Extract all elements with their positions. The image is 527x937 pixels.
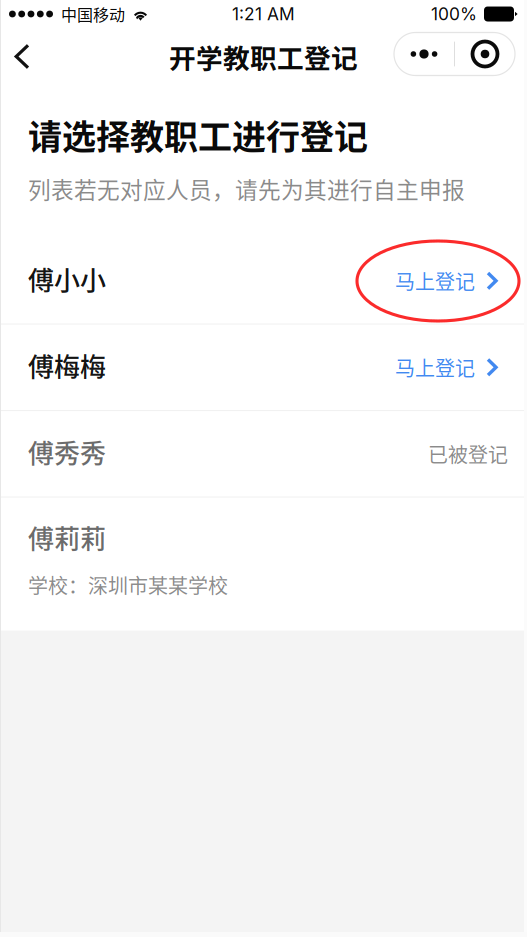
staticText: 100% <box>431 3 477 24</box>
staticText: 傅秀秀 <box>28 433 106 471</box>
button[interactable]: Back <box>1 30 43 82</box>
staticText: 傅梅梅 <box>28 346 106 384</box>
staticText: 学校：深圳市某某学校 <box>28 570 228 599</box>
staticText: 开学教职工登记 <box>169 37 358 76</box>
staticText: 马上登记 <box>395 353 475 382</box>
button[interactable]: More <box>394 32 454 75</box>
button[interactable]: Close mini program <box>455 32 515 75</box>
button[interactable]: 马上登记 <box>395 256 498 305</box>
button[interactable]: 马上登记 <box>395 343 498 392</box>
staticText: 中国移动 <box>61 2 125 26</box>
staticText: 请选择教职工进行登记 <box>28 110 368 159</box>
staticText: 已被登记 <box>428 439 508 468</box>
staticText: 傅莉莉 <box>28 519 106 556</box>
staticText: 马上登记 <box>395 266 475 295</box>
staticText: 1:21 AM <box>232 3 295 24</box>
staticText: 傅小小 <box>28 260 106 298</box>
staticText: 列表若无对应人员，请先为其进行自主申报 <box>28 172 465 205</box>
